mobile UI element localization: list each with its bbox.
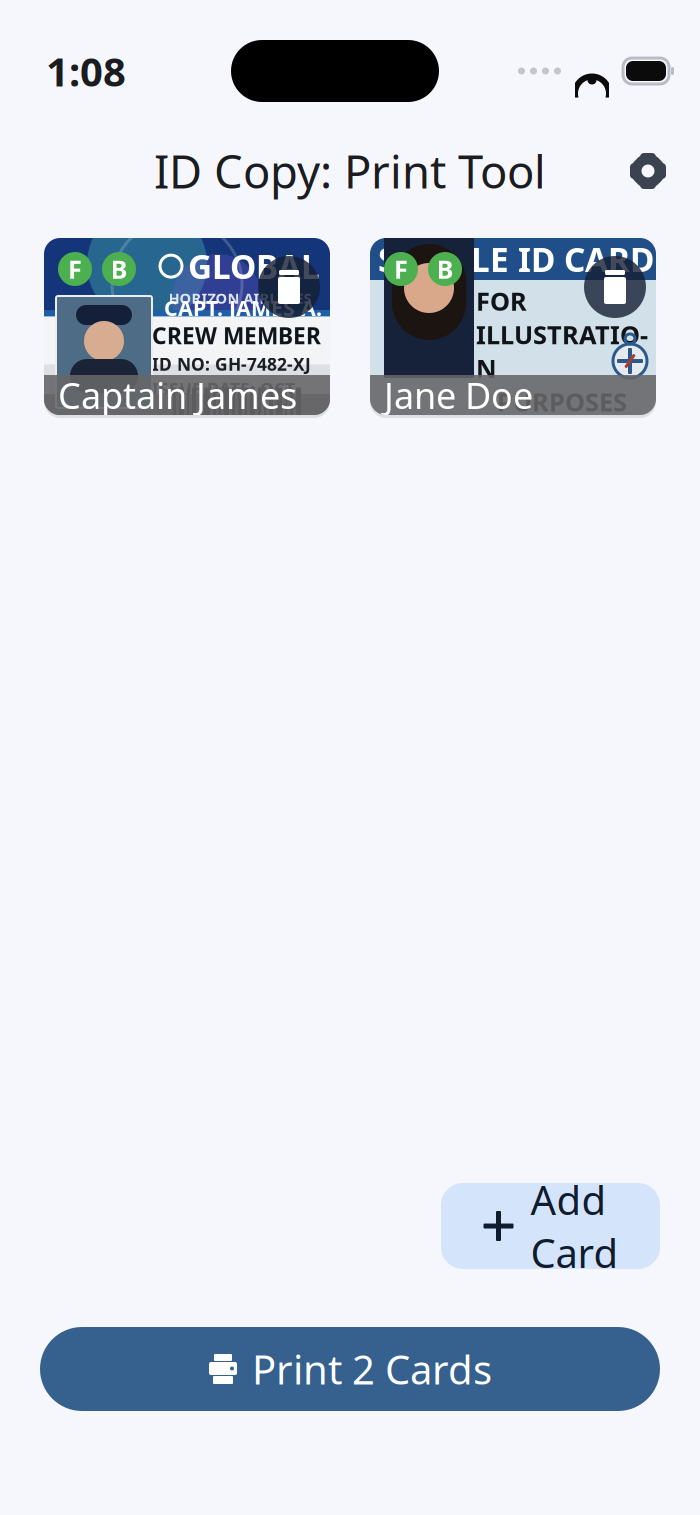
staticText: HORIZON AIRLINES <box>168 288 311 308</box>
button[interactable]: Delete card <box>258 256 320 318</box>
button[interactable]: Jane Doe <box>370 238 656 415</box>
staticText: F <box>394 252 408 286</box>
staticText: 1:08 <box>46 44 126 97</box>
staticText: GLOBAL <box>188 244 320 288</box>
staticText: ISSUE DATE: OCT 2023 <box>152 377 295 423</box>
staticText: ID NO: GH-7482-XJ <box>152 352 311 375</box>
staticText: Jane Doe <box>384 371 533 419</box>
staticText: B <box>436 252 453 286</box>
button[interactable]: Delete card <box>584 256 646 318</box>
button[interactable]: Settings <box>620 143 676 199</box>
staticText: SAMPLE ID CARD <box>378 237 654 281</box>
staticText: B <box>110 252 127 286</box>
staticText: PURPOSES ONLY <box>497 385 627 452</box>
button[interactable]: Captain James <box>44 238 330 415</box>
staticText: ID Copy: Print Tool <box>154 141 546 201</box>
staticText: F <box>68 252 82 286</box>
staticText: FOR ILLUSTRATION <box>476 284 648 385</box>
staticText: CREW MEMBER <box>152 320 321 350</box>
staticText: Print 2 Cards <box>252 1342 492 1395</box>
staticText: Captain James <box>58 371 297 419</box>
button[interactable]: Add Card <box>441 1183 660 1269</box>
staticText: Add Card <box>530 1173 618 1279</box>
staticText: CAPT. JAMES A. O'CONNELL <box>164 294 322 350</box>
button[interactable]: Print 2 Cards <box>40 1327 660 1411</box>
